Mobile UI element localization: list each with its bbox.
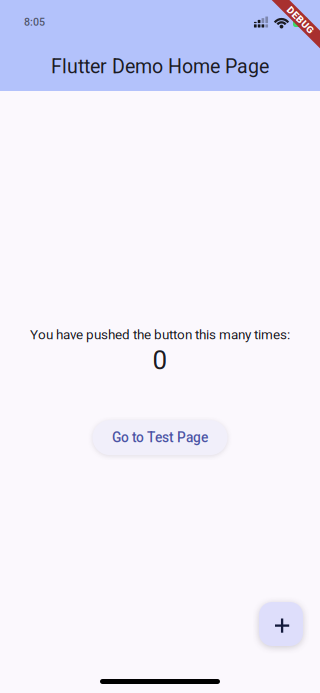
- staticText: DEBUG: [283, 14, 317, 26]
- staticText: 0: [152, 345, 167, 376]
- staticText: You have pushed the button this many tim…: [30, 327, 290, 343]
- staticText: Flutter Demo Home Page: [51, 55, 269, 78]
- staticText: 8:05: [24, 16, 45, 28]
- button[interactable]: Go to Test Page: [92, 420, 227, 455]
- staticText: Go to Test Page: [112, 430, 208, 446]
- button[interactable]: Increment: [259, 602, 303, 646]
